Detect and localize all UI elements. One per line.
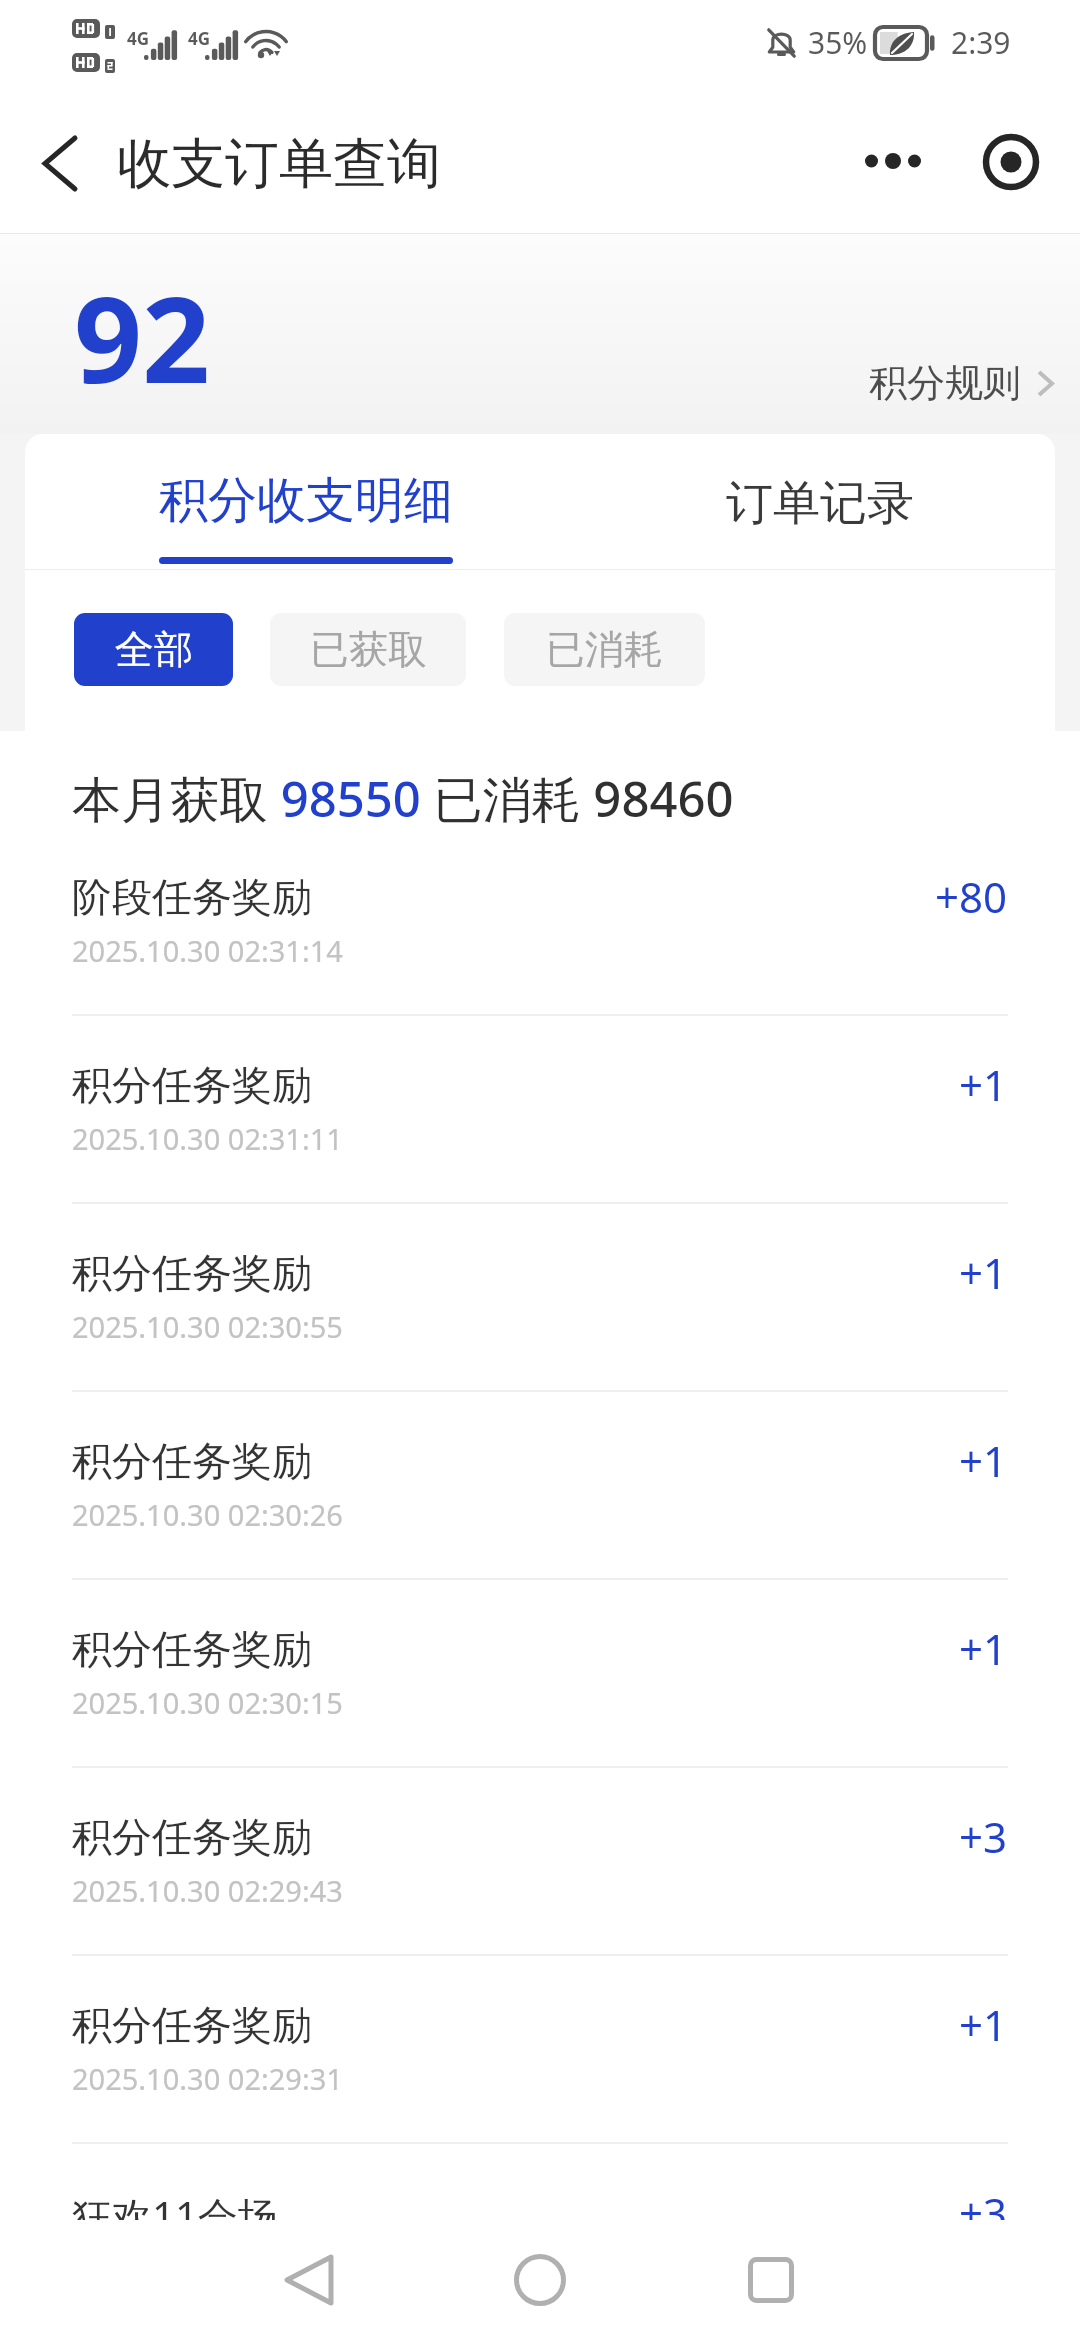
staticText: 全部 xyxy=(115,625,193,674)
button[interactable]: 全部 xyxy=(74,613,233,686)
staticText: 2025.10.30 02:31:11 xyxy=(72,1119,343,1158)
button[interactable]: 积分任务奖励 xyxy=(0,1580,1080,1768)
staticText: 积分任务奖励 xyxy=(72,1060,312,1110)
staticText: 阶段任务奖励 xyxy=(72,872,312,922)
staticText: 2025.10.30 02:29:43 xyxy=(72,1871,343,1910)
staticText: 收支订单查询 xyxy=(117,130,441,198)
button[interactable]: More options xyxy=(847,111,939,211)
staticText: 积分任务奖励 xyxy=(72,1248,312,1298)
staticText: 2025.10.30 02:29:10 xyxy=(72,2247,343,2286)
staticText: +1 xyxy=(959,1620,1008,1677)
staticText: +3 xyxy=(959,2184,1008,2241)
button[interactable]: Back xyxy=(12,108,108,218)
staticText: 4G xyxy=(188,27,211,50)
staticText: +1 xyxy=(959,1244,1008,1301)
staticText: 积分收支明细 xyxy=(159,470,453,532)
staticText: +1 xyxy=(959,1432,1008,1489)
button[interactable]: 积分任务奖励 xyxy=(0,1016,1080,1204)
button[interactable]: 已消耗 xyxy=(504,613,705,686)
button[interactable]: Recents xyxy=(711,2220,831,2340)
staticText: 狂欢11会场 xyxy=(72,2188,278,2243)
button[interactable]: 积分规则 xyxy=(863,353,1060,413)
staticText: +1 xyxy=(959,1056,1008,1113)
staticText: 2025.10.30 02:29:31 xyxy=(72,2059,343,2098)
staticText: 4G xyxy=(127,27,150,50)
button[interactable]: 狂欢11会场 xyxy=(0,2144,1080,2332)
staticText: 2025.10.30 02:30:55 xyxy=(72,1307,343,1346)
button[interactable]: 积分任务奖励 xyxy=(0,1956,1080,2144)
staticText: 积分规则 xyxy=(869,359,1021,407)
staticText: 已获取 xyxy=(310,625,427,674)
button[interactable]: 订单记录 xyxy=(680,434,960,570)
staticText: 92 xyxy=(74,256,211,418)
button[interactable]: 阶段任务奖励 xyxy=(0,828,1080,1016)
staticText: 2:39 xyxy=(951,22,1011,63)
button[interactable]: 积分任务奖励 xyxy=(0,1392,1080,1580)
staticText: 积分任务奖励 xyxy=(72,1436,312,1486)
staticText: 积分任务奖励 xyxy=(72,1624,312,1674)
staticText: 2025.10.30 02:30:15 xyxy=(72,1683,343,1722)
staticText: 积分任务奖励 xyxy=(72,1812,312,1862)
button[interactable]: 已获取 xyxy=(270,613,466,686)
staticText: +1 xyxy=(959,1996,1008,2053)
button[interactable]: Back xyxy=(249,2220,369,2340)
staticText: 2025.10.30 02:31:14 xyxy=(72,931,343,970)
button[interactable]: 积分任务奖励 xyxy=(0,1768,1080,1956)
button[interactable]: Close xyxy=(955,112,1067,212)
staticText: 订单记录 xyxy=(726,474,914,533)
button[interactable]: 积分任务奖励 xyxy=(0,1204,1080,1392)
staticText: 2025.10.30 02:30:26 xyxy=(72,1495,343,1534)
button[interactable]: Home xyxy=(480,2220,600,2340)
staticText: +3 xyxy=(959,1808,1008,1865)
staticText: +80 xyxy=(935,868,1008,925)
staticText: 积分任务奖励 xyxy=(72,2000,312,2050)
staticText: 已消耗 xyxy=(546,625,663,674)
button[interactable]: 积分收支明细 xyxy=(106,434,506,570)
staticText: 35% xyxy=(808,22,868,63)
staticText: 本月获取 98550 已消耗 98460 xyxy=(72,765,734,828)
